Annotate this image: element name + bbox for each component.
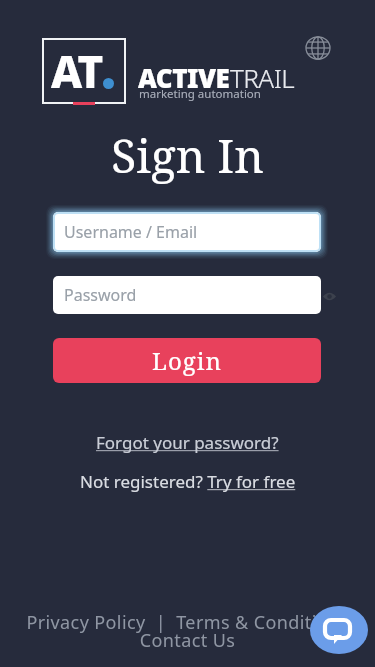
staticText: Password xyxy=(64,284,137,306)
staticText: Sign In xyxy=(0,124,375,187)
button[interactable]: Privacy Policy | Terms & Conditions xyxy=(0,610,375,635)
staticText: AT xyxy=(51,41,102,101)
button[interactable]: Contact Us xyxy=(0,628,375,653)
button[interactable]: Forgot your password? xyxy=(96,431,279,454)
staticText: TRAIL xyxy=(230,60,295,95)
button[interactable] xyxy=(323,292,336,301)
button[interactable]: Password xyxy=(53,276,321,314)
button[interactable]: Username / Email xyxy=(53,212,321,252)
button[interactable] xyxy=(305,36,331,60)
staticText: marketing automation xyxy=(139,86,261,102)
button[interactable]: Not registered? Try for free xyxy=(80,470,296,493)
button[interactable]: Login xyxy=(53,338,321,383)
button[interactable] xyxy=(310,606,368,654)
staticText: ACTIVE xyxy=(138,60,230,95)
staticText: Login xyxy=(152,344,222,377)
staticText: Username / Email xyxy=(64,221,198,243)
